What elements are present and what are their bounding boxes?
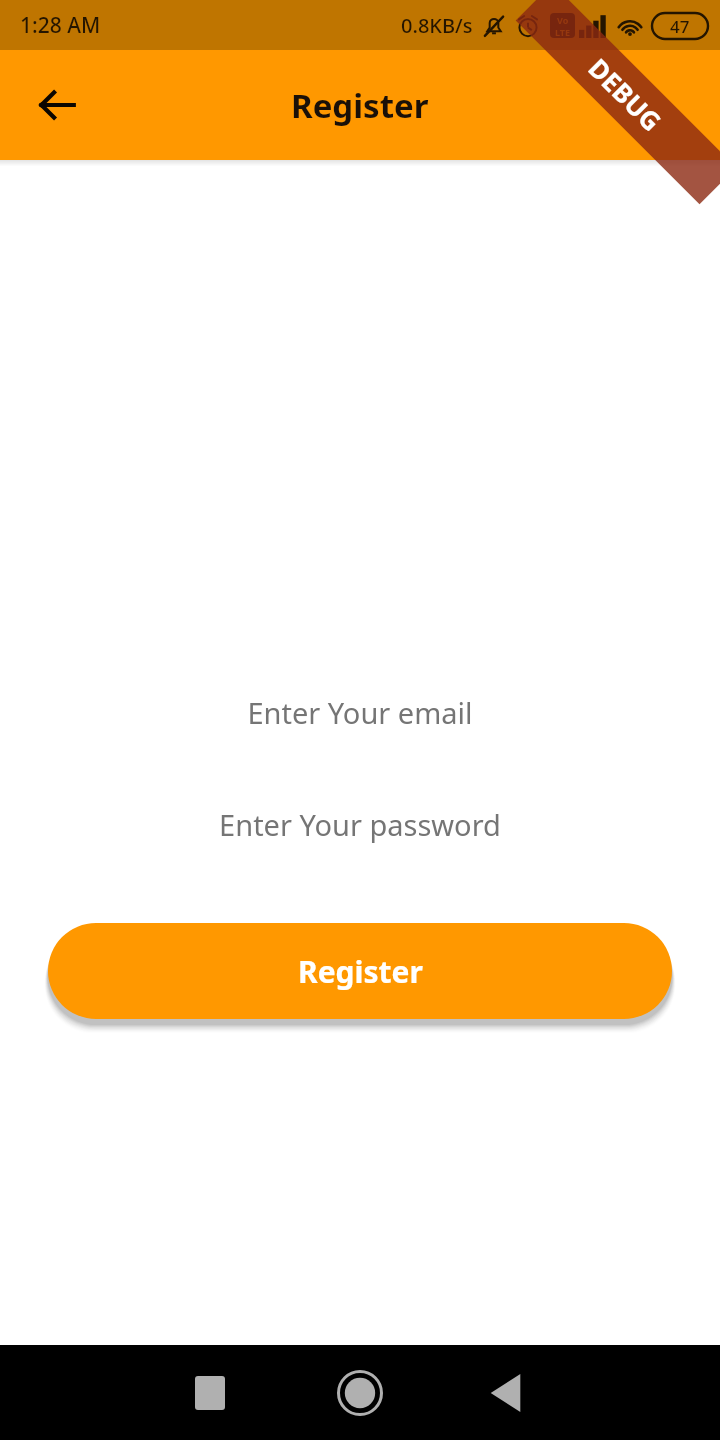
staticText: 0.8KB/s: [401, 12, 473, 39]
button[interactable]: Back: [17, 65, 97, 145]
staticText: LTE: [555, 26, 571, 38]
staticText: 47: [670, 15, 690, 38]
staticText: DEBUG: [581, 50, 670, 139]
staticText: Register: [298, 951, 423, 992]
button[interactable]: Home: [310, 1345, 410, 1440]
staticText: Register: [291, 83, 429, 128]
staticText: 1:28 AM: [20, 11, 101, 40]
staticText: Enter Your email: [247, 693, 473, 732]
staticText: Enter Your password: [219, 805, 501, 844]
button[interactable]: Register: [48, 923, 672, 1019]
button[interactable]: Recent apps: [160, 1345, 260, 1440]
button[interactable]: Back: [455, 1345, 555, 1440]
button[interactable]: Enter Your password: [0, 796, 720, 852]
staticText: Vo: [557, 14, 569, 26]
button[interactable]: Enter Your email: [0, 684, 720, 740]
